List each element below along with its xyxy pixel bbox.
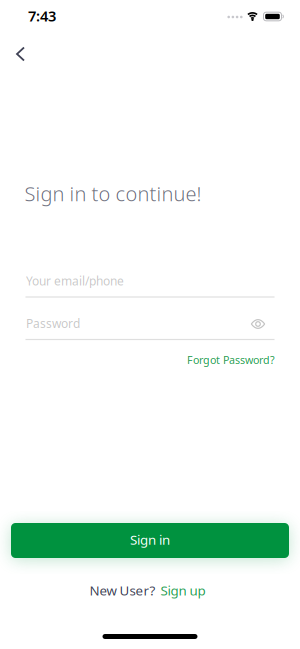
button[interactable]: Sign up: [161, 581, 206, 599]
button[interactable]: Forgot Password?: [187, 353, 275, 367]
staticText: Sign in: [130, 531, 170, 548]
staticText: Your email/phone: [26, 273, 124, 289]
button[interactable]: Sign in: [11, 523, 289, 558]
staticText: Forgot Password?: [187, 353, 275, 367]
staticText: Sign up: [161, 581, 206, 599]
staticText: Password: [26, 315, 80, 331]
staticText: 7:43: [28, 6, 56, 26]
button[interactable]: Show password: [245, 313, 271, 335]
staticText: Sign in to continue!: [24, 180, 201, 207]
staticText: New User?: [90, 581, 156, 599]
button[interactable]: Back: [7, 39, 34, 68]
